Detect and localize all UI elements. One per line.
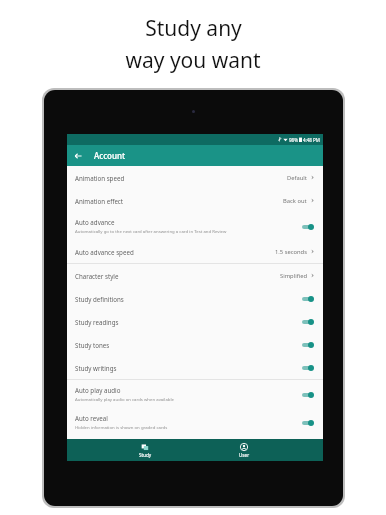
button[interactable]: Auto advance <box>67 212 323 240</box>
button[interactable]: Auto play audio <box>67 380 323 408</box>
staticText: Study tones <box>75 341 110 349</box>
staticText: Study definitions <box>75 295 124 303</box>
staticText: Study any <box>145 14 242 43</box>
button[interactable]: Animation speed <box>67 166 323 189</box>
staticText: Auto advance <box>75 218 115 226</box>
staticText: Account <box>94 150 126 161</box>
staticText: Animation effect <box>75 197 124 205</box>
staticText: Study readings <box>75 318 119 326</box>
button[interactable]: Study writings <box>67 356 323 379</box>
button[interactable]: Auto advance speed <box>67 240 323 263</box>
staticText: Study <box>139 452 152 458</box>
staticText: Auto play audio <box>75 386 121 394</box>
button[interactable]: Study readings <box>67 310 323 333</box>
staticText: Auto advance speed <box>75 248 134 256</box>
staticText: Automatically go to the next card after … <box>75 228 227 234</box>
staticText: 1.5 seconds <box>275 248 307 256</box>
staticText: Study writings <box>75 364 117 372</box>
button[interactable]: Study definitions <box>67 287 323 310</box>
staticText: User <box>239 452 250 458</box>
staticText: 4:48 PM <box>303 137 320 143</box>
button[interactable]: Character style <box>67 264 323 287</box>
button[interactable]: Study tones <box>67 333 323 356</box>
staticText: Auto reveal <box>75 414 108 422</box>
staticText: Hidden information is shown on graded ca… <box>75 424 168 430</box>
button[interactable]: User <box>224 443 264 458</box>
button[interactable]: Auto reveal <box>67 408 323 436</box>
staticText: Animation speed <box>75 174 125 182</box>
staticText: 98% <box>289 137 298 143</box>
button[interactable]: Study <box>125 443 165 458</box>
staticText: Automatically play audio on cards when a… <box>75 396 175 402</box>
staticText: way you want <box>125 46 261 75</box>
button[interactable]: Back <box>67 145 88 166</box>
button[interactable]: Animation effect <box>67 189 323 212</box>
staticText: Default <box>287 174 307 182</box>
staticText: Simplified <box>280 272 307 280</box>
staticText: Back out <box>283 197 307 205</box>
staticText: Character style <box>75 272 119 280</box>
